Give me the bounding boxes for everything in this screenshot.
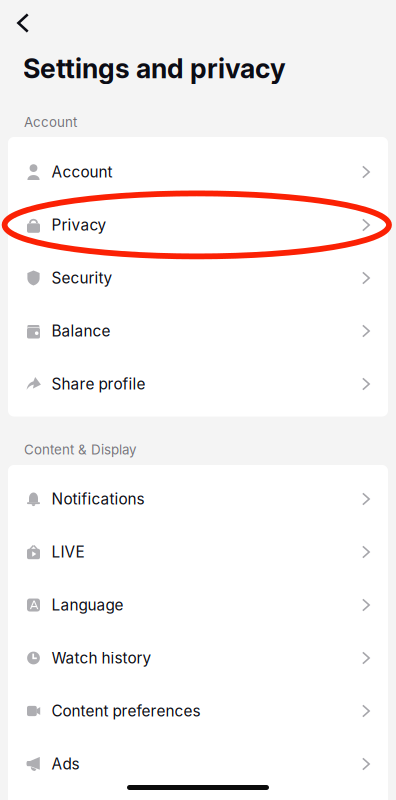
staticText: Privacy [51,216,106,234]
staticText: Content preferences [51,702,200,720]
staticText: Language [51,596,123,614]
button[interactable]: LIVE [8,525,388,578]
staticText: Settings and privacy [23,52,286,85]
button[interactable]: Notifications [8,472,388,525]
staticText: Watch history [51,649,151,667]
staticText: Balance [51,322,110,340]
button[interactable]: Watch history [8,631,388,684]
staticText: Content & Display [24,441,136,458]
button[interactable]: Content preferences [8,684,388,737]
staticText: Account [51,163,112,181]
button[interactable]: Share profile [8,357,388,410]
button[interactable]: Language [8,578,388,631]
button[interactable]: Privacy [8,198,388,251]
button[interactable]: Security [8,251,388,304]
button[interactable]: Account [8,145,388,198]
button[interactable]: Back [1,1,45,45]
staticText: Account [24,114,77,130]
staticText: LIVE [51,543,84,561]
staticText: Share profile [51,375,145,393]
staticText: Security [51,269,112,287]
button[interactable]: Ads [8,737,388,790]
staticText: Notifications [51,490,144,508]
staticText: Ads [51,755,79,773]
button[interactable]: Balance [8,304,388,357]
